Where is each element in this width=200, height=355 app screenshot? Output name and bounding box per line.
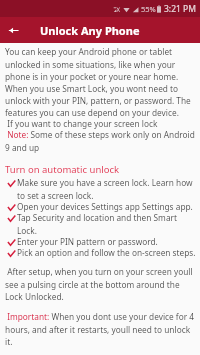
staticText: Tap Security and location and then Smart… <box>17 212 196 236</box>
staticText: After setup, when you turn on your scree… <box>5 266 196 302</box>
staticText: Make sure you have a screen lock. Learn … <box>17 177 196 201</box>
staticText: Unlock Any Phone <box>40 23 140 38</box>
staticText: Open your devices Settings app Settings … <box>17 201 196 212</box>
staticText: You can keep your Android phone or table… <box>5 46 196 118</box>
button[interactable]: Back <box>0 17 26 43</box>
staticText: Enter your PIN pattern or password. <box>17 236 196 247</box>
staticText: If you want to change your screen lock <box>5 118 158 129</box>
staticText: Important: When you dont use your device… <box>5 311 196 347</box>
staticText: Note: Some of these steps work only on A… <box>5 129 196 153</box>
staticText: 55% <box>141 4 156 14</box>
staticText: 3:21 PM <box>164 3 196 15</box>
staticText: Turn on automatic unlock <box>5 163 120 176</box>
staticText: Pick an option and follow the on-screen … <box>17 247 196 258</box>
